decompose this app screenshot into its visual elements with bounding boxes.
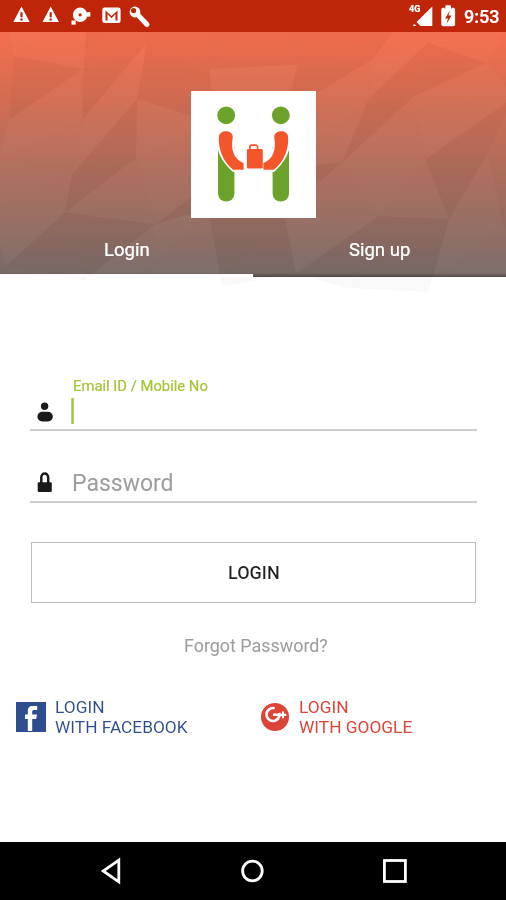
- staticText: WITH GOOGLE: [299, 717, 413, 737]
- staticText: Login: [104, 239, 150, 261]
- staticText: Password: [72, 470, 174, 497]
- button[interactable]: LOGIN: [259, 697, 415, 739]
- staticText: LOGIN: [228, 562, 280, 583]
- staticText: Forgot Password?: [184, 635, 328, 656]
- staticText: WITH FACEBOOK: [55, 717, 188, 737]
- staticText: 4G: [409, 4, 421, 15]
- button[interactable]: Forgot Password?: [3, 630, 506, 660]
- staticText: 9:53: [464, 6, 500, 27]
- button[interactable]: Sign up: [253, 229, 506, 277]
- button[interactable]: Home: [224, 842, 284, 900]
- staticText: Email ID / Mobile No: [73, 377, 208, 394]
- button[interactable]: Login: [0, 229, 253, 277]
- button[interactable]: Back: [81, 842, 141, 900]
- button[interactable]: LOGIN: [14, 697, 190, 739]
- staticText: LOGIN: [299, 697, 349, 717]
- staticText: Sign up: [349, 239, 411, 261]
- button[interactable]: LOGIN: [31, 542, 476, 603]
- staticText: LOGIN: [55, 697, 105, 717]
- button[interactable]: Recents: [366, 842, 426, 900]
